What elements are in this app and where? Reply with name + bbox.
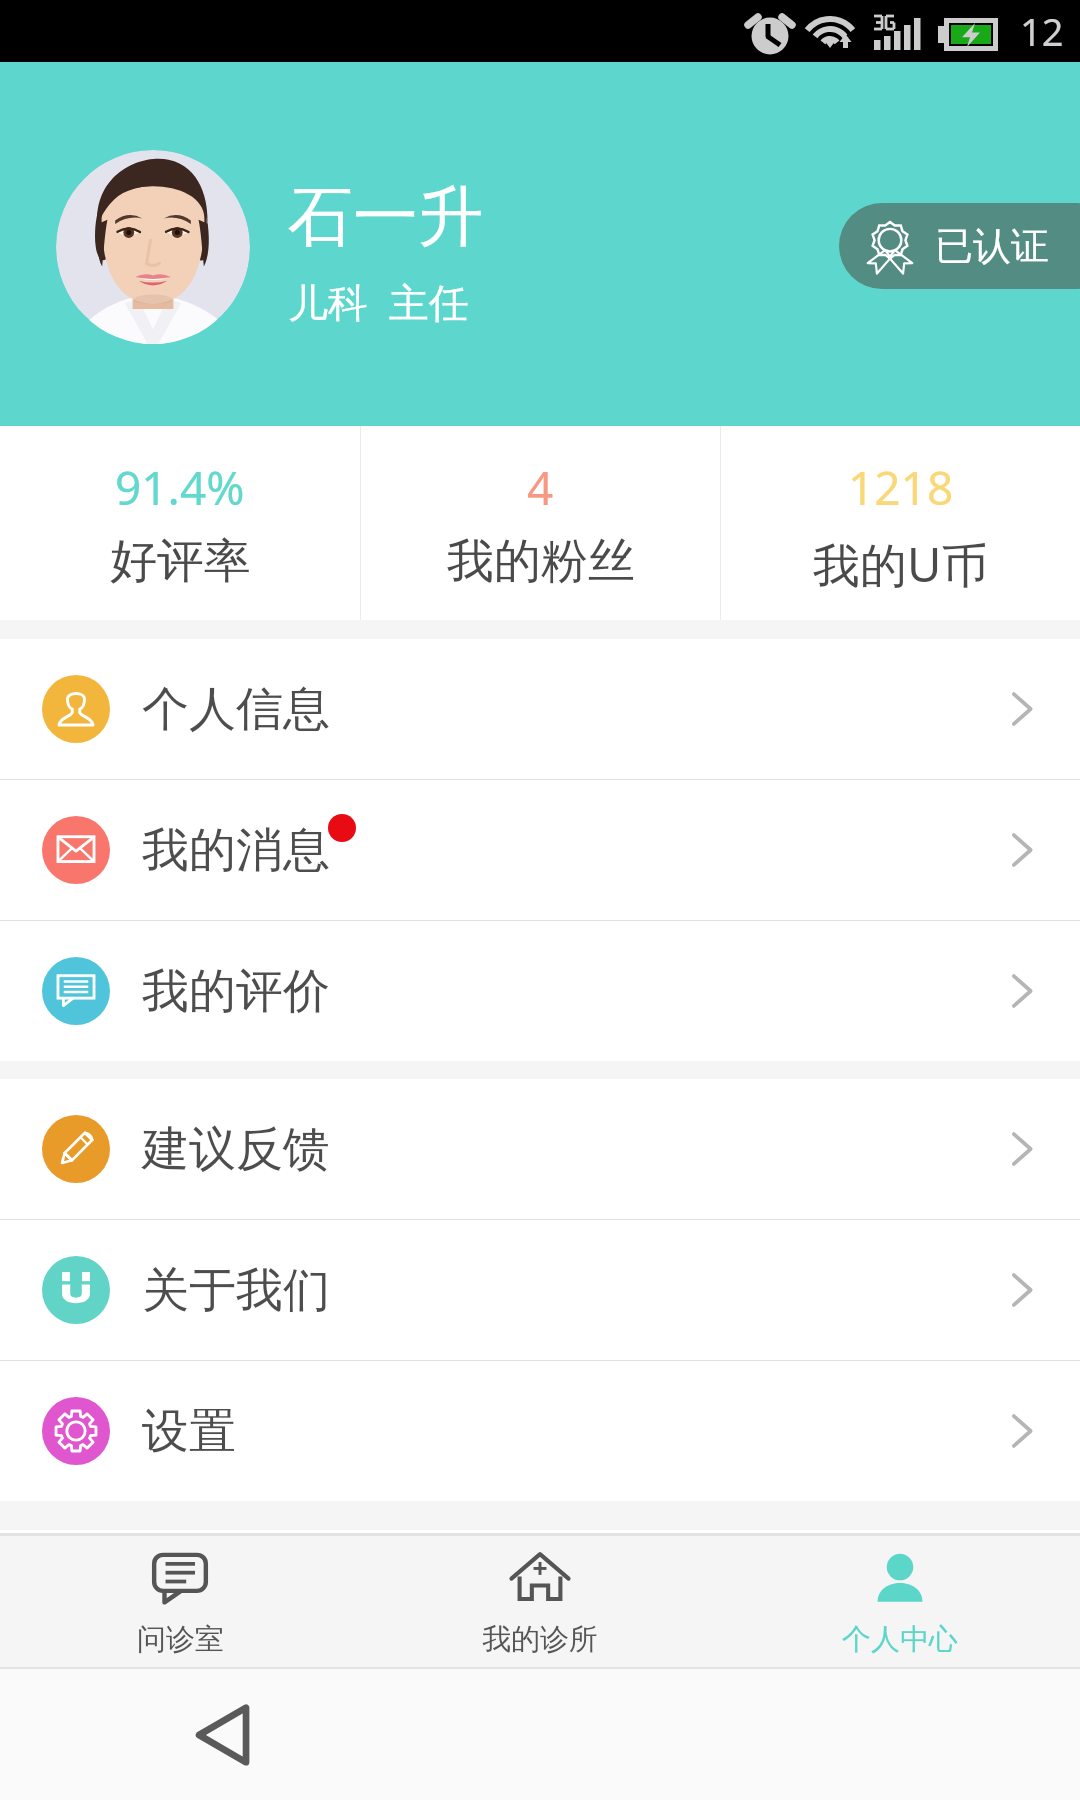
button[interactable]: 返回 Back [152, 1669, 292, 1800]
staticText: 我的评价 [142, 962, 330, 1021]
staticText: 已认证 [935, 222, 1049, 270]
staticText: 个人信息 [142, 680, 330, 739]
button[interactable]: 1218 [721, 426, 1080, 596]
staticText: 好评率 [110, 532, 251, 591]
button[interactable]: 关于我们 [0, 1220, 1080, 1360]
staticText: 我的诊所 [482, 1621, 598, 1658]
staticText: 设置 [142, 1402, 236, 1461]
staticText: 我的粉丝 [447, 532, 635, 591]
staticText: 12 [1020, 5, 1064, 57]
button[interactable]: Profile [720, 1536, 1080, 1658]
staticText: 91.4% [115, 456, 245, 519]
staticText: 我的U币 [813, 532, 989, 596]
button[interactable]: 建议反馈 [0, 1079, 1080, 1219]
button[interactable]: 个人信息 [0, 639, 1080, 779]
button[interactable]: 石一升 [288, 176, 483, 329]
button[interactable]: 4 [361, 426, 720, 591]
button[interactable]: 我的消息 [0, 780, 1080, 920]
staticText: 4 [527, 456, 554, 519]
button[interactable]: Consultation room [0, 1536, 360, 1658]
staticText: 我的消息 [142, 821, 330, 880]
staticText: 关于我们 [142, 1261, 330, 1320]
staticText: 儿科 主任 [288, 274, 469, 329]
button[interactable]: 已认证 Verified [839, 203, 1080, 289]
button[interactable]: 设置 [0, 1361, 1080, 1501]
button[interactable]: 我的评价 [0, 921, 1080, 1061]
staticText: 问诊室 [137, 1621, 224, 1658]
button[interactable]: 91.4% [0, 426, 360, 591]
staticText: 1218 [848, 456, 954, 519]
button[interactable]: 头像 Avatar [56, 150, 250, 344]
staticText: 石一升 [288, 176, 483, 258]
button[interactable]: My clinic [360, 1536, 720, 1658]
staticText: 建议反馈 [142, 1120, 330, 1179]
staticText: 个人中心 [842, 1621, 958, 1658]
